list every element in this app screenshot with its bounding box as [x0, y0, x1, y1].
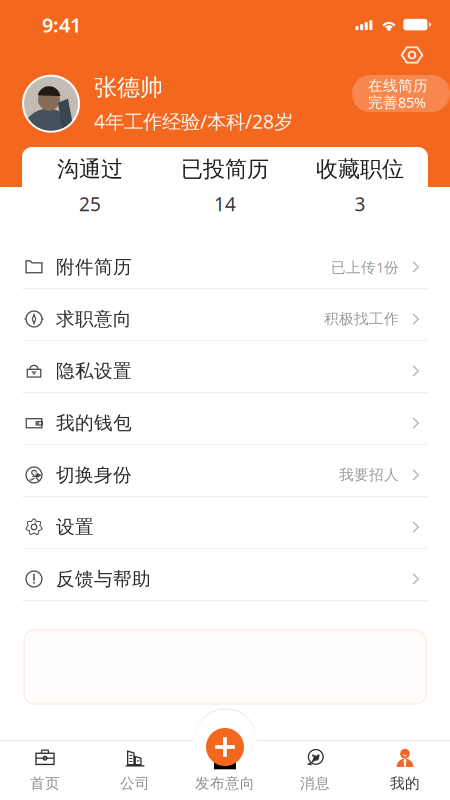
staticText: 首页 — [30, 774, 60, 793]
button[interactable]: 附件简历 — [0, 241, 450, 293]
button[interactable]: Camera settings — [394, 39, 430, 71]
button[interactable]: 切换身份 — [0, 449, 450, 501]
staticText: 已上传1份 — [331, 257, 399, 277]
button[interactable]: 我的 — [360, 750, 450, 790]
staticText: 14 — [214, 191, 236, 217]
staticText: 3 — [354, 191, 365, 217]
staticText: 消息 — [300, 774, 330, 793]
staticText: 设置 — [56, 515, 94, 539]
button[interactable]: 已投简历 — [157, 147, 292, 225]
staticText: 求职意向 — [56, 307, 132, 331]
button[interactable]: 反馈与帮助 — [0, 553, 450, 605]
staticText: 公司 — [120, 774, 150, 793]
button[interactable]: 消息 — [270, 750, 360, 790]
button[interactable]: 在线简历 — [352, 75, 450, 112]
staticText: 我的钱包 — [56, 411, 132, 435]
staticText: 4年工作经验/本科/28岁 — [94, 108, 293, 134]
button[interactable]: 沟通过 — [22, 147, 157, 225]
staticText: 我的 — [390, 774, 420, 793]
button[interactable]: 我的钱包 — [0, 397, 450, 449]
staticText: 已投简历 — [181, 155, 269, 183]
button[interactable]: 发布意向 — [180, 750, 270, 790]
staticText: 张德帅 — [94, 73, 163, 102]
button[interactable]: 首页 — [0, 750, 90, 790]
staticText: 25 — [79, 191, 101, 217]
button[interactable]: 求职意向 — [0, 293, 450, 345]
staticText: 沟通过 — [57, 155, 123, 183]
staticText: 完善85% — [368, 92, 426, 112]
button[interactable]: 隐私设置 — [0, 345, 450, 397]
staticText: 附件简历 — [56, 255, 132, 279]
staticText: 9:41 — [42, 11, 81, 38]
button[interactable]: 公司 — [90, 750, 180, 790]
button[interactable]: 设置 — [0, 501, 450, 553]
staticText: 切换身份 — [56, 463, 132, 487]
staticText: 收藏职位 — [316, 155, 404, 183]
staticText: 在线简历 — [368, 77, 428, 95]
staticText: 发布意向 — [195, 774, 255, 793]
staticText: 反馈与帮助 — [56, 567, 151, 591]
staticText: 积极找工作 — [324, 310, 399, 328]
staticText: 我要招人 — [339, 466, 399, 484]
button[interactable]: 发布意向 — [206, 728, 244, 766]
button[interactable]: 收藏职位 — [292, 147, 427, 225]
staticText: 隐私设置 — [56, 359, 132, 383]
